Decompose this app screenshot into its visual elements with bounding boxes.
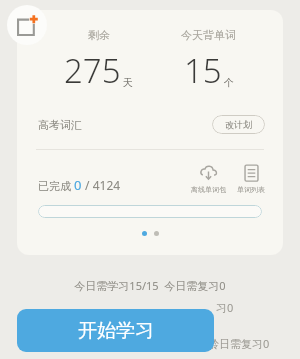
staticText: 天 (123, 76, 133, 89)
button[interactable]: Add widget (7, 5, 47, 45)
button[interactable]: 开始学习 (17, 309, 214, 352)
staticText: 今天背单词 (181, 28, 236, 42)
staticText: 习0 (216, 300, 234, 315)
staticText: / 4124 (82, 177, 121, 193)
staticText: 剩余 (88, 28, 110, 42)
staticText: 单词列表 (237, 185, 265, 194)
staticText: 275 (64, 48, 121, 93)
staticText: 龄日需复习0 (208, 336, 270, 351)
staticText: 改计划 (225, 119, 252, 130)
button[interactable]: 离线单词包 (189, 164, 228, 194)
staticText: 高考词汇 (38, 118, 82, 132)
staticText: 今日需学习15/15 今日需复习0 (74, 278, 226, 293)
staticText: 已完成 (38, 178, 74, 193)
staticText: 个 (224, 76, 234, 89)
staticText: 开始学习 (78, 319, 154, 343)
staticText: 0 (74, 176, 82, 194)
button[interactable]: 改计划 (212, 115, 265, 134)
staticText: 离线单词包 (191, 185, 226, 194)
button[interactable]: 单词列表 (235, 164, 267, 194)
staticText: 15 (184, 48, 222, 93)
